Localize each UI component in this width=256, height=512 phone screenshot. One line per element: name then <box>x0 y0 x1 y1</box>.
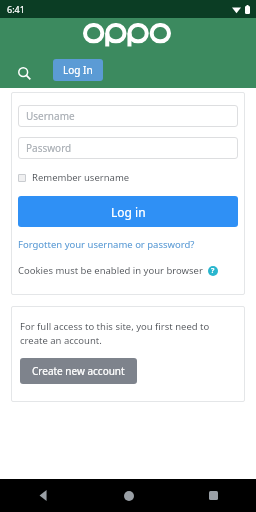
button[interactable]: Remember username <box>18 169 130 186</box>
staticText: 6:41 <box>7 3 25 15</box>
button[interactable]: Username <box>18 105 238 127</box>
button[interactable]: Create new account <box>20 358 137 384</box>
button[interactable]: Forgotten your username or password? <box>18 238 195 251</box>
staticText: Log In <box>63 63 93 77</box>
staticText: For full access to this site, you first … <box>20 320 236 347</box>
button[interactable]: Search <box>13 62 35 84</box>
staticText: Remember username <box>32 171 130 184</box>
button[interactable]: Back <box>0 479 86 512</box>
staticText: Cookies must be enabled in your browser <box>18 264 203 277</box>
staticText: Username <box>26 109 75 123</box>
staticText: ? <box>211 266 215 276</box>
button[interactable]: Log in <box>18 196 238 227</box>
button[interactable]: Password <box>18 137 238 159</box>
button[interactable]: Help about cookies <box>208 266 218 276</box>
button[interactable]: Log In <box>53 59 103 81</box>
button[interactable]: Home <box>86 479 171 512</box>
staticText: Forgotten your username or password? <box>18 238 195 251</box>
staticText: Create new account <box>32 364 125 378</box>
button[interactable]: Recent apps <box>171 479 256 512</box>
staticText: Log in <box>111 204 146 220</box>
staticText: Password <box>26 141 72 155</box>
